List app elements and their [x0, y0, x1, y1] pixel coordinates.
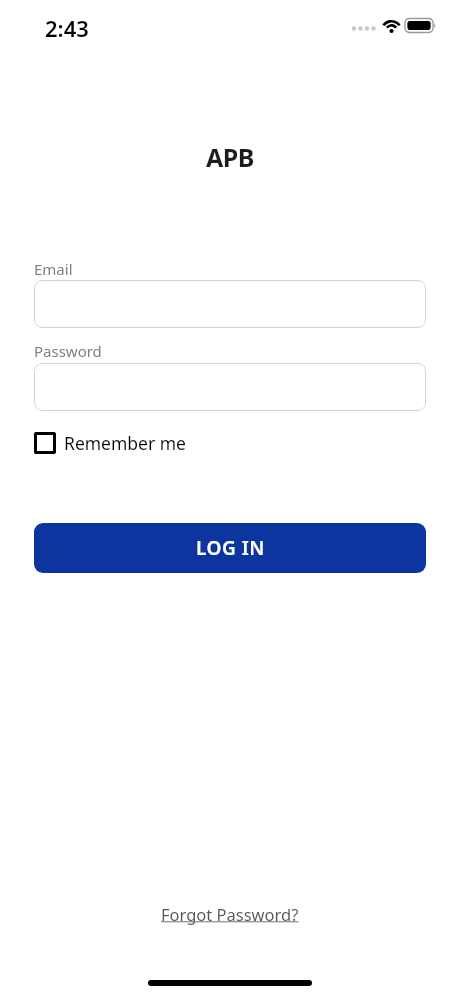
- staticText: Password: [34, 341, 102, 361]
- button[interactable]: Forgot Password?: [161, 903, 299, 925]
- staticText: Email: [34, 259, 73, 279]
- button[interactable]: Remember me: [34, 431, 186, 455]
- staticText: LOG IN: [196, 535, 265, 561]
- staticText: Remember me: [64, 431, 186, 455]
- staticText: APB: [206, 140, 254, 174]
- button[interactable]: [34, 280, 426, 328]
- staticText: Forgot Password?: [161, 903, 299, 925]
- button[interactable]: LOG IN: [34, 523, 426, 573]
- button[interactable]: [34, 363, 426, 411]
- staticText: 2:43: [45, 13, 89, 43]
